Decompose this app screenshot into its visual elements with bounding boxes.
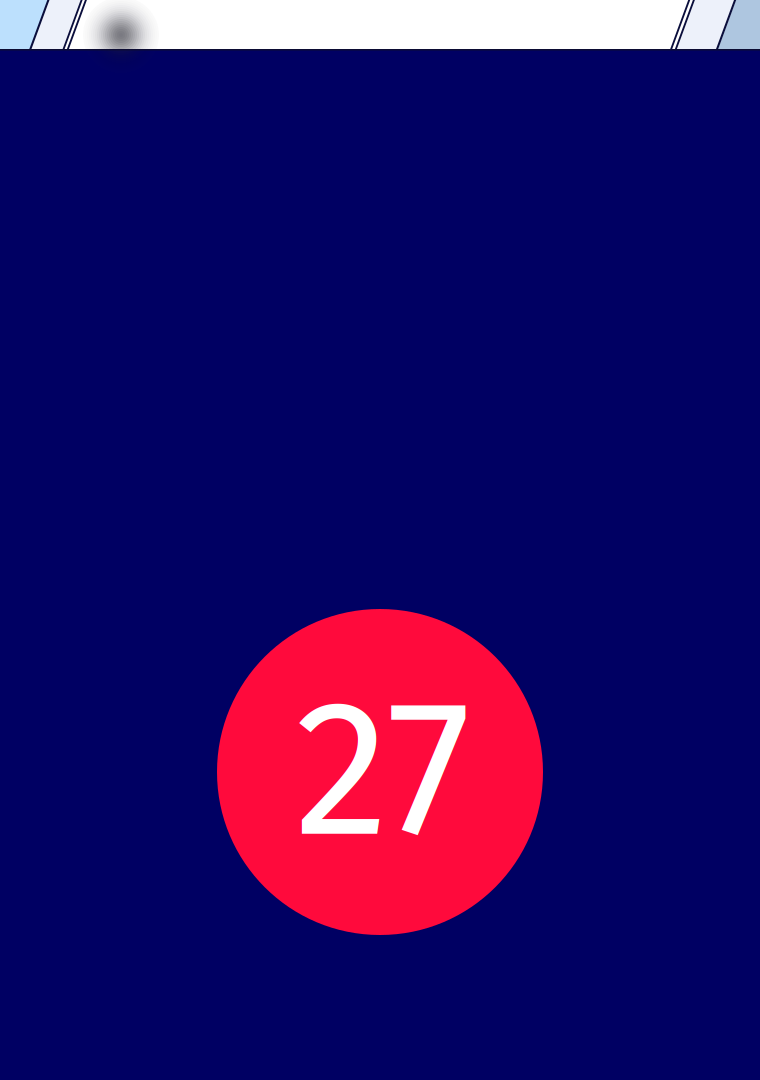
staticText: 27 [294, 656, 471, 884]
button[interactable]: 27 [217, 609, 543, 935]
